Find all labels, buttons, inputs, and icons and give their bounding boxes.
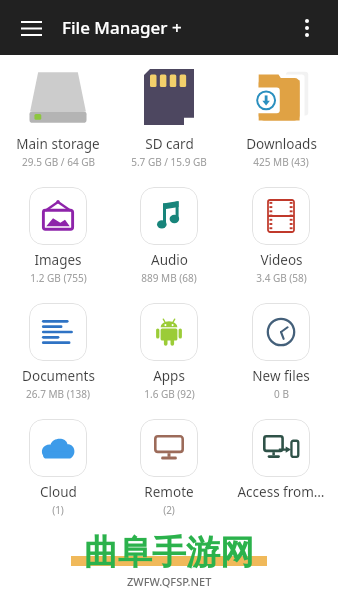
staticText: Audio <box>151 251 188 269</box>
staticText: New files <box>252 367 310 385</box>
staticText: Apps <box>153 367 185 385</box>
staticText: 5.7 GB / 15.9 GB <box>131 155 207 169</box>
button[interactable]: Downloads <box>227 59 335 171</box>
staticText: Images <box>34 251 82 269</box>
staticText: 1.6 GB (92) <box>144 387 195 401</box>
button[interactable]: Remote <box>115 413 223 519</box>
staticText: 3.4 GB (58) <box>256 271 307 285</box>
staticText: Main storage <box>16 135 100 153</box>
staticText: File Manager + <box>62 16 182 39</box>
button[interactable]: SD card <box>115 59 223 171</box>
staticText: Downloads <box>246 135 317 153</box>
staticText: Remote <box>144 483 194 501</box>
button[interactable]: Documents <box>4 297 112 403</box>
staticText: Documents <box>22 367 95 385</box>
button[interactable]: Apps <box>115 297 223 403</box>
button[interactable]: Videos <box>227 181 335 287</box>
staticText: SD card <box>145 135 194 153</box>
staticText: Cloud <box>40 483 77 501</box>
staticText: 29.5 GB / 64 GB <box>22 155 95 169</box>
staticText: Access from… <box>237 483 325 501</box>
staticText: 曲阜手游网 <box>84 531 254 574</box>
button[interactable]: New files <box>227 297 335 403</box>
staticText: 425 MB (43) <box>253 155 309 169</box>
button[interactable]: More options <box>290 11 324 45</box>
button[interactable]: Open navigation menu <box>14 11 48 45</box>
staticText: 26.7 MB (138) <box>26 387 90 401</box>
staticText: Videos <box>260 251 303 269</box>
staticText: (2) <box>163 503 175 517</box>
staticText: ZWFW.QFSP.NET <box>127 574 212 589</box>
button[interactable]: Access from… <box>227 413 335 519</box>
button[interactable]: Audio <box>115 181 223 287</box>
button[interactable]: Cloud <box>4 413 112 519</box>
staticText: 1.2 GB (755) <box>30 271 87 285</box>
button[interactable]: Main storage <box>4 59 112 171</box>
button[interactable]: Images <box>4 181 112 287</box>
staticText: 889 MB (68) <box>141 271 197 285</box>
staticText: 0 B <box>274 387 289 401</box>
staticText: (1) <box>52 503 64 517</box>
